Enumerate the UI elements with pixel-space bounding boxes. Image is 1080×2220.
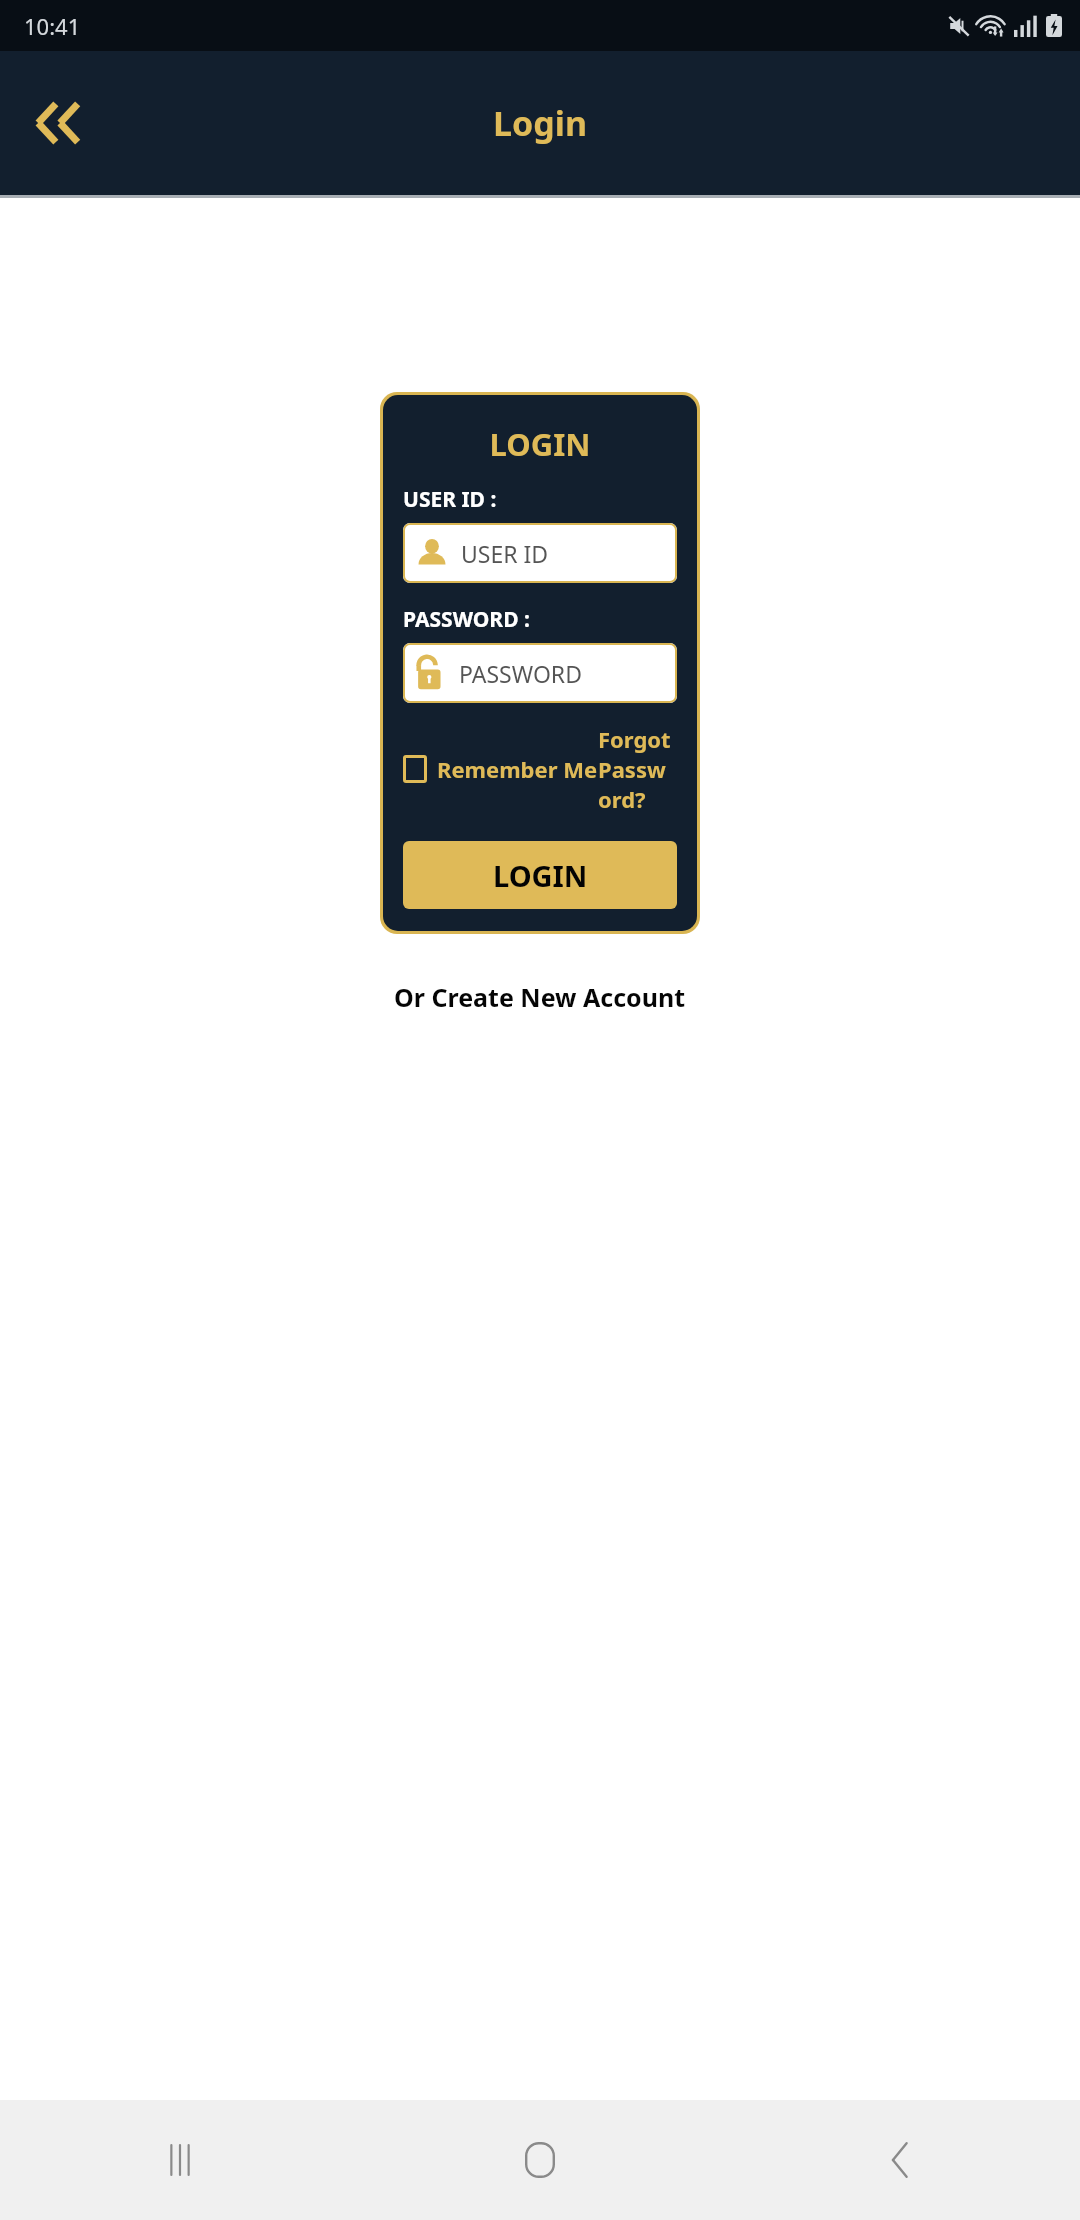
button[interactable]: USER ID — [403, 523, 677, 583]
staticText: LOGIN — [493, 856, 588, 895]
staticText: Login — [493, 100, 588, 146]
staticText: USER ID — [461, 538, 549, 569]
button[interactable]: Forgot Password? — [598, 720, 677, 818]
button[interactable]: Remember Me — [403, 750, 598, 788]
staticText: PASSWORD : — [403, 605, 530, 634]
staticText: Remember Me — [437, 754, 598, 784]
staticText: USER ID : — [403, 485, 497, 514]
button[interactable]: Recents — [0, 2100, 360, 2220]
staticText: PASSWORD — [459, 658, 582, 689]
button[interactable]: LOGIN — [403, 841, 677, 909]
button[interactable]: Home — [360, 2100, 720, 2220]
button[interactable]: Back — [20, 83, 100, 163]
staticText: LOGIN — [403, 423, 677, 465]
staticText: 10:41 — [24, 11, 81, 41]
button[interactable]: Back — [720, 2100, 1080, 2220]
button[interactable]: PASSWORD — [403, 643, 677, 703]
staticText: Forgot Password? — [598, 724, 677, 814]
staticText: Or Create New Account — [394, 980, 686, 1014]
button[interactable]: Or Create New Account — [378, 972, 702, 1022]
